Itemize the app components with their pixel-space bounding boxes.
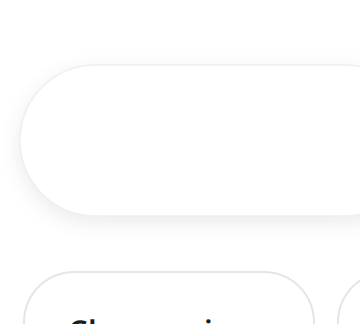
button[interactable]: Next option — [338, 272, 360, 324]
button[interactable]: Change ringer — [24, 272, 314, 324]
staticText: Change ringer — [68, 310, 283, 324]
